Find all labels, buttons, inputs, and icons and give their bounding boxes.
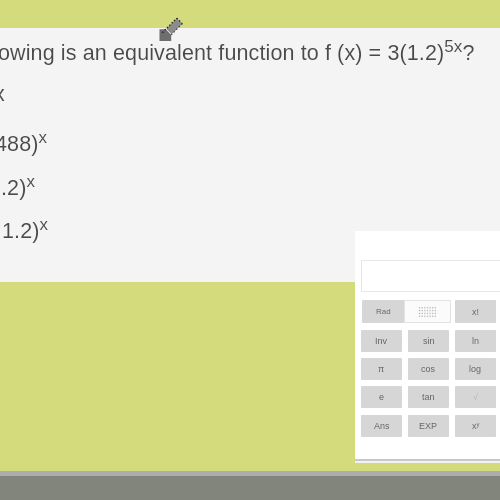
staticText: Inv [375,336,388,346]
staticText: e [379,392,385,402]
button[interactable]: sin [408,330,449,352]
other: Pen tool cursor [160,13,186,39]
staticText: x! [472,307,480,317]
button[interactable]: Ans [361,415,402,437]
staticText: cos [421,364,436,374]
staticText: sin [423,336,435,346]
button[interactable]: Rad [362,300,404,323]
staticText: log [469,364,482,374]
staticText: Rad [376,307,391,316]
staticText: .2)x [1,172,36,200]
button[interactable]: x! [455,300,496,323]
button[interactable]: cos [408,358,449,380]
button[interactable]: Keyboard [404,300,451,323]
staticText: Ans [374,421,390,431]
button[interactable] [361,260,500,292]
staticText: 488)x [0,128,48,156]
staticText: EXP [419,421,438,431]
staticText: xʸ [472,421,480,431]
button[interactable]: Inv [361,330,402,352]
staticText: tan [422,392,435,402]
button[interactable]: e [361,386,402,408]
button[interactable]: π [361,358,402,380]
staticText: 1.2)x [2,215,49,243]
button[interactable]: tan [408,386,449,408]
staticText: π [378,364,385,374]
button[interactable]: xʸ [455,415,496,437]
staticText: ln [472,336,480,346]
staticText: x [0,82,5,106]
staticText: √ [473,392,478,402]
button[interactable]: ln [455,330,496,352]
button[interactable]: EXP [408,415,449,437]
button[interactable]: log [455,358,496,380]
staticText: owing is an equivalent function to f (x)… [0,37,475,65]
